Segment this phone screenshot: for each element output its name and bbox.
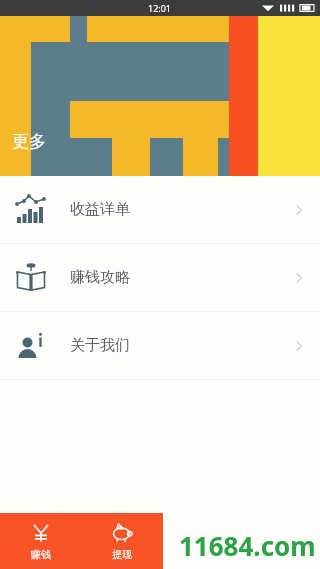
staticText: 更多 <box>12 131 46 152</box>
staticText: 关于我们 <box>70 336 130 355</box>
staticText: 赚钱攻略 <box>70 268 130 287</box>
button[interactable]: 赚钱 <box>0 513 81 569</box>
staticText: 12:01 <box>148 2 172 14</box>
button[interactable]: 收益详单 <box>0 176 320 243</box>
button[interactable]: 关于我们 <box>0 312 320 379</box>
staticText: 11684.com <box>179 528 316 563</box>
staticText: 提现 <box>112 548 132 561</box>
staticText: 赚钱 <box>31 548 51 561</box>
button[interactable]: 赚钱攻略 <box>0 244 320 311</box>
staticText: 收益详单 <box>70 200 130 219</box>
button[interactable]: 提现 <box>81 513 163 569</box>
